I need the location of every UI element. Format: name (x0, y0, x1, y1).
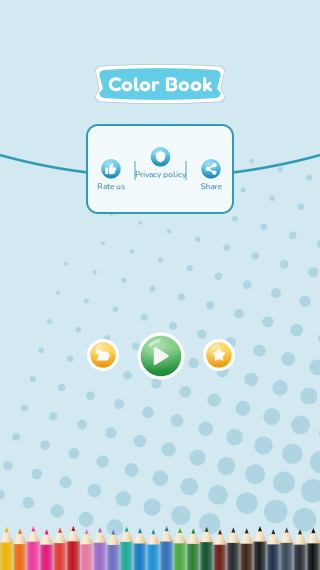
button[interactable]: Rate us (97, 158, 125, 192)
button[interactable]: Play (137, 332, 184, 379)
button[interactable]: My pictures (87, 339, 119, 371)
button[interactable]: Privacy policy (135, 146, 186, 180)
button[interactable]: Share (200, 158, 222, 192)
staticText: Share (200, 181, 221, 192)
staticText: Rate us (97, 181, 125, 192)
button[interactable]: Favorites (203, 339, 235, 371)
staticText: Color Book (108, 71, 212, 96)
staticText: Privacy policy (135, 169, 186, 180)
